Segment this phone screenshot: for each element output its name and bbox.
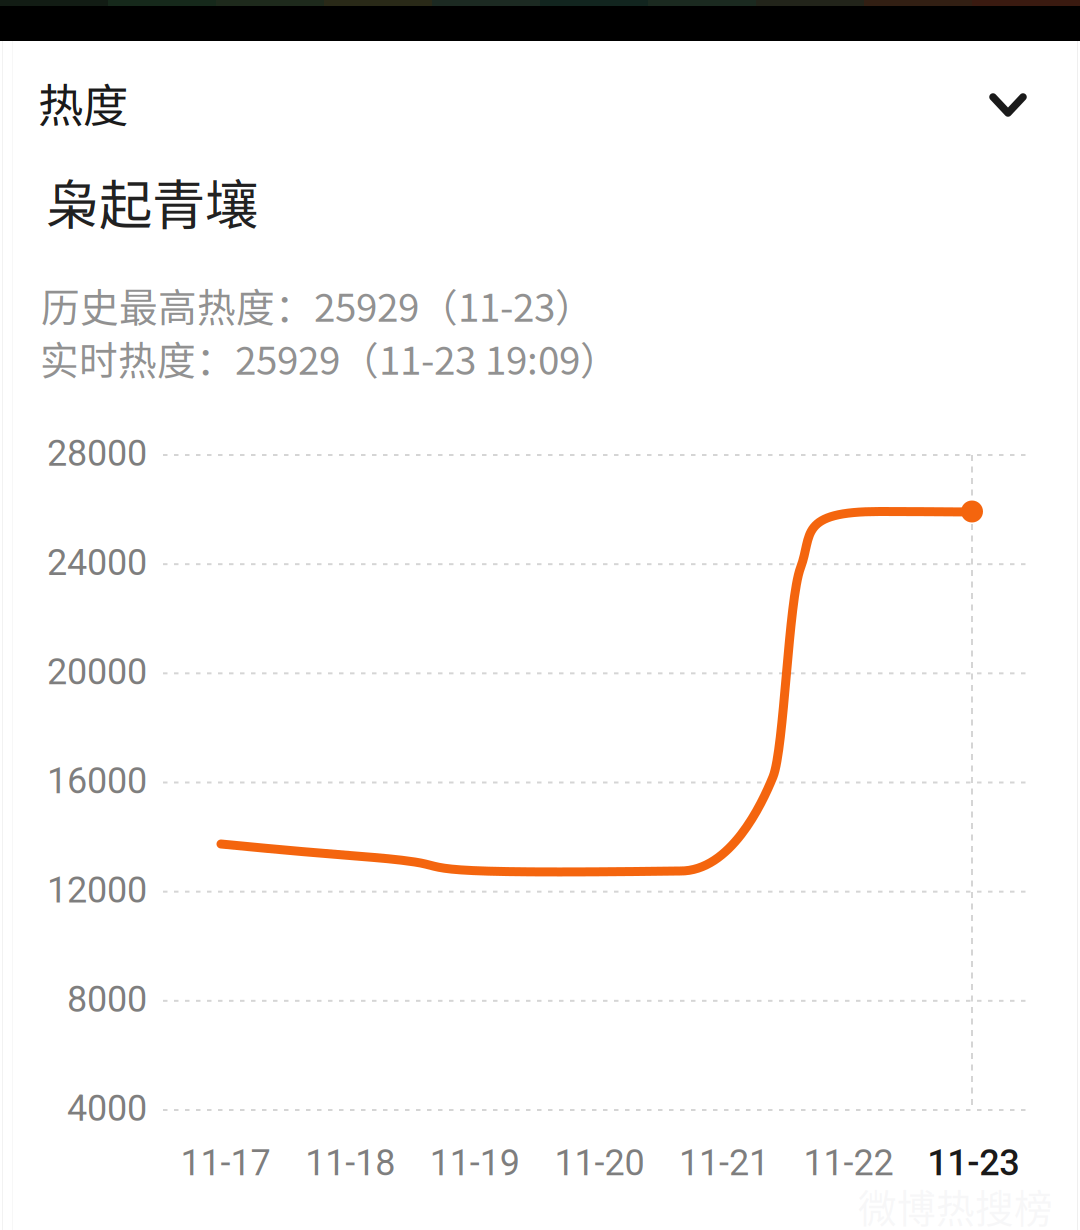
staticText: 11-18 [305, 1142, 395, 1184]
staticText: 枭起青壤 [46, 163, 258, 240]
staticText: 11-23 [927, 1142, 1019, 1184]
staticText: 热度 [38, 70, 128, 136]
staticText: 4000 [67, 1087, 147, 1130]
staticText: 11-17 [181, 1142, 271, 1184]
staticText: 24000 [47, 542, 147, 584]
staticText: 实时热度：25929（11-23 19:09） [40, 330, 619, 386]
staticText: 16000 [47, 760, 147, 802]
staticText: 微博热搜榜 [858, 1178, 1053, 1230]
staticText: 11-22 [804, 1142, 894, 1184]
staticText: 11-21 [679, 1142, 769, 1184]
staticText: 11-20 [554, 1142, 644, 1184]
staticText: 12000 [47, 869, 147, 911]
staticText: 28000 [47, 432, 147, 475]
staticText: 20000 [47, 651, 147, 693]
staticText: 11-19 [430, 1142, 520, 1184]
button[interactable]: 热度 [0, 70, 1080, 140]
staticText: 历史最高热度：25929（11-23） [41, 277, 594, 333]
staticText: 8000 [67, 978, 147, 1020]
